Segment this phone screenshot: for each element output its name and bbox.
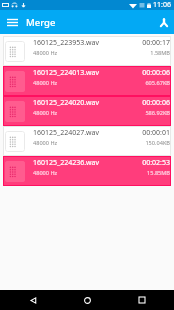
staticText: 00:00:06 bbox=[142, 98, 170, 108]
staticText: 48000 Hz bbox=[33, 109, 58, 117]
button[interactable]: Home bbox=[65, 290, 109, 310]
staticText: 11:06 bbox=[153, 0, 171, 10]
staticText: 00:00:17 bbox=[142, 38, 170, 48]
button[interactable]: Recent apps bbox=[120, 290, 164, 310]
staticText: 150.04KB bbox=[145, 139, 170, 147]
staticText: 160125_223953.wav bbox=[33, 38, 100, 48]
button[interactable]: 160125_224027.wav bbox=[3, 126, 171, 156]
staticText: 586.92KB bbox=[145, 109, 170, 117]
button[interactable]: 160125_224020.wav bbox=[3, 96, 171, 126]
staticText: 15.85MB bbox=[146, 169, 170, 177]
staticText: 48000 Hz bbox=[33, 79, 58, 87]
staticText: 48000 Hz bbox=[33, 169, 58, 177]
button[interactable]: 160125_223953.wav bbox=[3, 36, 171, 66]
staticText: Merge bbox=[26, 16, 56, 29]
staticText: 160125_224027.wav bbox=[33, 128, 100, 138]
staticText: 160125_224236.wav bbox=[33, 158, 100, 168]
staticText: 48000 Hz bbox=[33, 139, 58, 147]
staticText: 160125_224020.wav bbox=[33, 98, 100, 108]
staticText: 1.58MB bbox=[150, 49, 170, 57]
button[interactable]: Open navigation drawer bbox=[0, 10, 24, 34]
staticText: 00:00:06 bbox=[142, 68, 170, 78]
button[interactable]: Back bbox=[11, 290, 55, 310]
staticText: 00:00:01 bbox=[142, 128, 170, 138]
button[interactable]: 160125_224236.wav bbox=[3, 156, 171, 186]
staticText: 48000 Hz bbox=[33, 49, 58, 57]
button[interactable]: 160125_224013.wav bbox=[3, 66, 171, 96]
staticText: 00:02:53 bbox=[142, 158, 170, 168]
staticText: 605.67KB bbox=[145, 79, 170, 87]
button[interactable]: Merge bbox=[153, 12, 174, 33]
staticText: 160125_224013.wav bbox=[33, 68, 100, 78]
